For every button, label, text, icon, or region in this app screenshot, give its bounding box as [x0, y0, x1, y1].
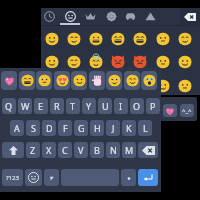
button[interactable]: Q — [2, 98, 16, 114]
button[interactable]: N — [106, 142, 120, 158]
staticText: X — [46, 144, 52, 156]
button[interactable]: Emoji — [174, 27, 196, 51]
staticText: F — [63, 122, 68, 134]
staticText: T — [70, 100, 76, 112]
staticText: I — [119, 100, 123, 112]
button[interactable]: Emoji — [129, 27, 151, 51]
button[interactable]: Kaomoji — [180, 104, 194, 117]
staticText: R — [54, 100, 60, 112]
button[interactable]: Emoji — [85, 50, 107, 74]
staticText: N — [110, 144, 117, 156]
staticText: V — [78, 144, 84, 156]
button[interactable]: Backspace — [180, 8, 200, 25]
staticText: S — [31, 122, 36, 134]
button[interactable]: V — [74, 142, 88, 158]
button[interactable]: Space — [61, 169, 119, 186]
button[interactable]: A — [10, 120, 24, 136]
button[interactable]: W — [18, 98, 32, 114]
button[interactable]: Period — [121, 169, 136, 186]
button[interactable]: G — [74, 120, 88, 136]
button[interactable]: Category 4 — [102, 8, 120, 25]
button[interactable]: Category 3 — [81, 8, 99, 25]
staticText: M — [125, 144, 134, 156]
button[interactable]: Emoji suggestion — [54, 71, 70, 90]
button[interactable]: K — [122, 120, 136, 136]
button[interactable]: Category 6 — [141, 8, 159, 25]
button[interactable]: Emoji — [63, 50, 85, 74]
button[interactable]: J — [106, 120, 120, 136]
button[interactable]: Sparkling heart emoji — [163, 104, 177, 117]
button[interactable]: Emoji — [174, 50, 196, 74]
button[interactable]: Emoji — [25, 169, 42, 186]
button[interactable]: Emoji suggestion — [141, 71, 157, 90]
staticText: K — [126, 122, 132, 134]
button[interactable]: Comma — [44, 169, 59, 186]
button[interactable]: Emoji — [174, 74, 196, 98]
button[interactable]: L — [138, 120, 152, 136]
button[interactable]: Category 1 — [40, 8, 58, 25]
staticText: U — [102, 100, 109, 112]
button[interactable]: Category 5 — [121, 8, 139, 25]
button[interactable]: Emoji — [85, 27, 107, 51]
button[interactable]: Backspace — [138, 142, 158, 158]
staticText: O — [133, 100, 141, 112]
button[interactable]: S — [26, 120, 40, 136]
button[interactable]: Emoji suggestion — [1, 71, 17, 90]
button[interactable]: Emoji — [107, 27, 129, 51]
button[interactable]: Emoji — [41, 74, 63, 98]
staticText: E — [38, 100, 44, 112]
button[interactable]: Symbols — [2, 169, 23, 186]
button[interactable]: R — [50, 98, 64, 114]
staticText: L — [143, 122, 148, 134]
button[interactable]: P — [146, 98, 160, 114]
button[interactable]: O — [130, 98, 144, 114]
staticText: D — [46, 122, 53, 134]
button[interactable]: Shift — [2, 142, 24, 158]
button[interactable]: Emoji — [63, 74, 85, 98]
button[interactable]: Emoji suggestion — [106, 71, 122, 90]
button[interactable]: Y — [82, 98, 96, 114]
button[interactable]: T — [66, 98, 80, 114]
button[interactable]: Z — [26, 142, 40, 158]
staticText: Y — [86, 100, 92, 112]
staticText: B — [94, 144, 100, 156]
staticText: J — [112, 122, 115, 134]
button[interactable]: Emoji suggestion — [89, 71, 105, 90]
staticText: Q — [5, 100, 13, 112]
button[interactable]: Emoji — [107, 74, 129, 98]
button[interactable]: Enter — [138, 169, 158, 186]
button[interactable]: Emoji — [85, 74, 107, 98]
button[interactable]: M — [122, 142, 136, 158]
button[interactable]: Emoji — [107, 50, 129, 74]
button[interactable]: Emoji — [152, 50, 174, 74]
button[interactable]: U — [98, 98, 112, 114]
button[interactable]: Category 2 — [61, 8, 79, 25]
staticText: A — [14, 122, 20, 134]
button[interactable]: Emoji — [152, 74, 174, 98]
staticText: C — [62, 144, 68, 156]
button[interactable]: Emoji suggestion — [19, 71, 35, 90]
staticText: ^_^ — [182, 107, 192, 115]
staticText: G — [78, 122, 85, 134]
button[interactable]: C — [58, 142, 72, 158]
button[interactable]: Emoji — [129, 74, 151, 98]
button[interactable]: Emoji — [41, 50, 63, 74]
button[interactable]: Emoji — [152, 27, 174, 51]
button[interactable]: F — [58, 120, 72, 136]
button[interactable]: Emoji suggestion — [124, 71, 140, 90]
button[interactable]: Emoji — [129, 50, 151, 74]
button[interactable]: X — [42, 142, 56, 158]
button[interactable]: D — [42, 120, 56, 136]
button[interactable]: E — [34, 98, 48, 114]
staticText: ?123 — [6, 174, 19, 182]
button[interactable]: H — [90, 120, 104, 136]
button[interactable]: Emoji suggestion — [71, 71, 87, 90]
staticText: W — [21, 100, 30, 112]
button[interactable]: Emoji — [41, 27, 63, 51]
button[interactable]: B — [90, 142, 104, 158]
staticText: P — [150, 100, 156, 112]
button[interactable]: I — [114, 98, 128, 114]
button[interactable]: Emoji — [63, 27, 85, 51]
button[interactable]: Emoji suggestion — [36, 71, 52, 90]
